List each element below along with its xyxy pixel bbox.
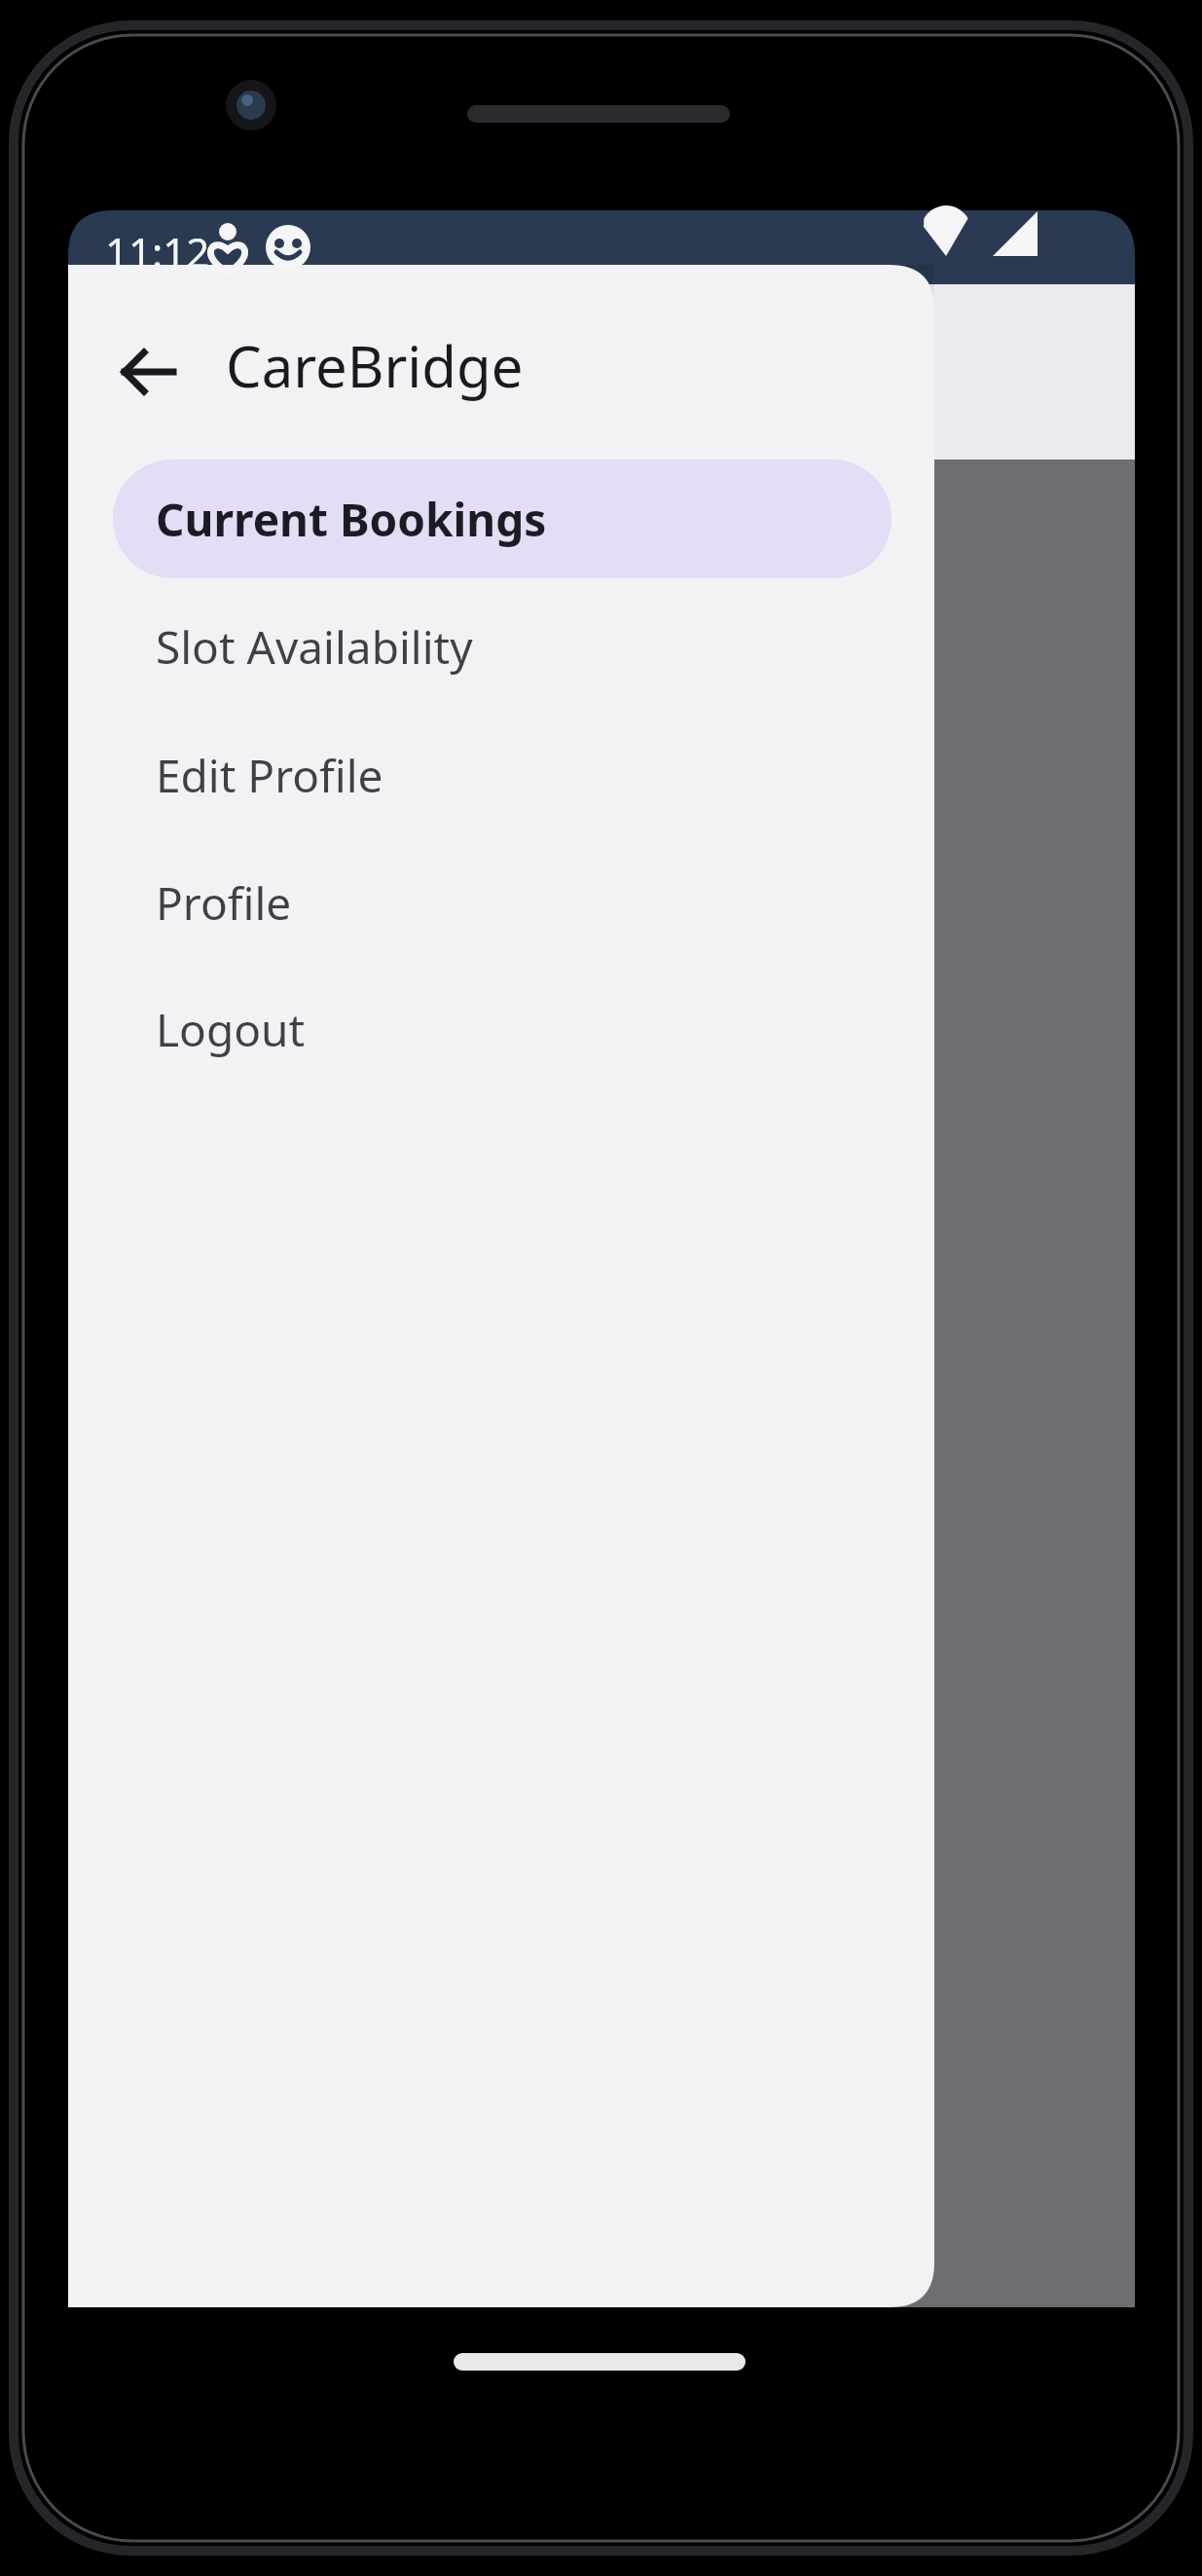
button[interactable]: Current Bookings bbox=[113, 460, 892, 578]
staticText: Logout bbox=[156, 999, 306, 1060]
button[interactable]: Profile bbox=[113, 848, 892, 957]
staticText: Profile bbox=[156, 872, 292, 934]
staticText: Edit Profile bbox=[156, 745, 383, 806]
button[interactable]: Close navigation drawer bbox=[934, 460, 1135, 2307]
staticText: CareBridge bbox=[226, 327, 524, 404]
button[interactable]: Edit Profile bbox=[113, 720, 892, 829]
button[interactable]: Logout bbox=[113, 975, 892, 1084]
staticText: Current Bookings bbox=[156, 489, 547, 550]
button[interactable]: Slot Availability bbox=[113, 592, 892, 701]
staticText: 11:12 bbox=[105, 224, 210, 279]
staticText: Slot Availability bbox=[156, 616, 473, 678]
button[interactable]: Back bbox=[93, 325, 187, 419]
